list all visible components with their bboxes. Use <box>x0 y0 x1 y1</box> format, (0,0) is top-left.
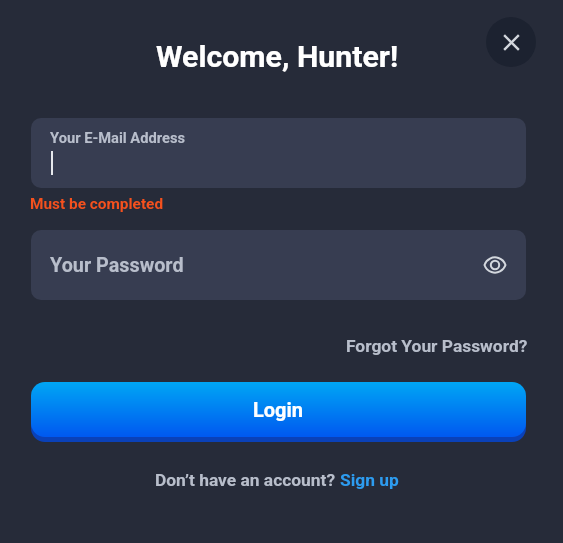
button[interactable]: Your Password <box>31 230 526 300</box>
staticText: Welcome, Hunter! <box>156 39 399 75</box>
staticText: Sign up <box>340 470 399 490</box>
button[interactable]: Show password <box>475 245 515 285</box>
button[interactable]: Forgot Your Password? <box>340 330 534 362</box>
button[interactable]: Your E-Mail Address <box>31 118 526 188</box>
button[interactable]: Login <box>31 382 526 437</box>
staticText: Your E-Mail Address <box>50 129 186 146</box>
staticText: Your Password <box>50 254 184 277</box>
staticText: Don’t have an account? <box>155 470 340 490</box>
staticText: Login <box>253 398 304 421</box>
staticText: Must be completed <box>30 195 164 213</box>
button[interactable]: Sign up <box>340 470 399 490</box>
staticText: Forgot Your Password? <box>346 336 528 356</box>
button[interactable]: Close <box>486 17 536 67</box>
